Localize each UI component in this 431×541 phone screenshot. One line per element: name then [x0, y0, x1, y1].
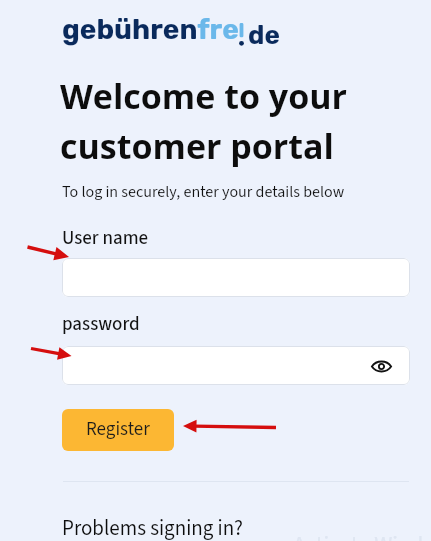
staticText: Register — [86, 416, 150, 443]
button[interactable]: Problems signing in? — [62, 513, 244, 541]
button[interactable] — [62, 258, 410, 297]
staticText: password — [62, 311, 140, 338]
staticText: User name — [62, 225, 149, 252]
button[interactable]: Register — [62, 409, 174, 451]
staticText: de — [248, 20, 280, 51]
button[interactable]: Show password — [366, 351, 396, 381]
button[interactable]: Show password — [62, 346, 410, 385]
staticText: To log in securely, enter your details b… — [62, 181, 345, 204]
staticText: Welcome to your customer portal — [60, 73, 347, 169]
staticText: gebührenfre — [62, 13, 239, 46]
